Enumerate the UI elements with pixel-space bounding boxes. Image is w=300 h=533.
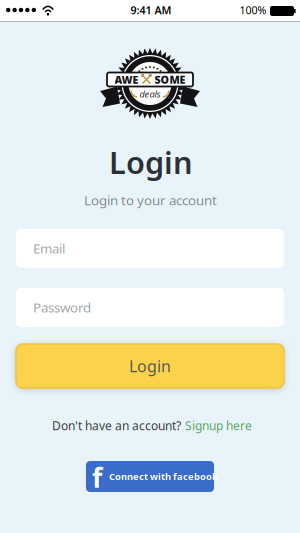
button[interactable]: Login <box>16 344 284 388</box>
staticText: Don't have an account? <box>52 417 181 433</box>
staticText: Login <box>109 142 193 182</box>
staticText: Login to your account <box>84 191 217 209</box>
staticText: deals <box>139 88 160 100</box>
staticText: f <box>92 460 102 495</box>
staticText: AWE <box>114 72 138 87</box>
staticText: 100% <box>239 3 266 17</box>
staticText: Login <box>129 355 171 377</box>
staticText: SOME <box>154 72 185 87</box>
staticText: Connect with facebook <box>109 470 218 483</box>
button[interactable]: Email <box>16 229 284 268</box>
button[interactable]: Don't have an account? <box>52 417 252 433</box>
staticText: 9:41 AM <box>130 3 171 17</box>
staticText: Password <box>33 298 91 316</box>
staticText: Signup here <box>185 417 252 433</box>
button[interactable]: f <box>88 461 216 492</box>
staticText: Email <box>33 239 65 257</box>
button[interactable]: Password <box>16 288 284 327</box>
